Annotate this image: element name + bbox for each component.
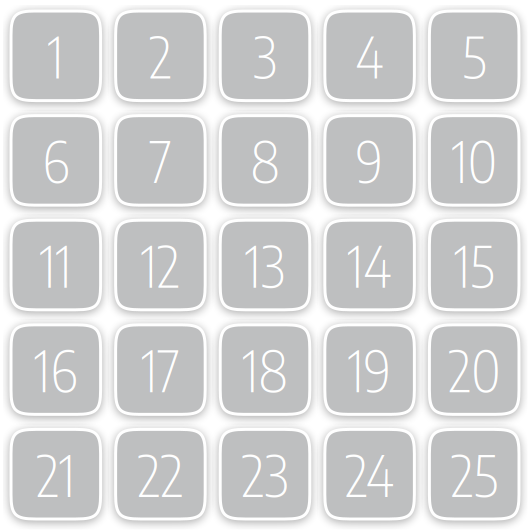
button[interactable]: 18 [220, 325, 310, 414]
button[interactable]: 7 [116, 116, 205, 205]
staticText: 17 [141, 335, 179, 405]
staticText: 2 [149, 21, 172, 91]
staticText: 20 [448, 335, 500, 405]
staticText: 3 [253, 21, 277, 91]
button[interactable]: 2 [116, 11, 205, 101]
staticText: 13 [245, 230, 285, 300]
staticText: 18 [242, 335, 287, 405]
button[interactable]: 16 [11, 325, 101, 414]
button[interactable]: 17 [116, 325, 205, 414]
staticText: 7 [149, 125, 171, 195]
staticText: 25 [451, 439, 498, 509]
button[interactable]: 21 [11, 429, 101, 519]
staticText: 1 [48, 21, 64, 91]
button[interactable]: 25 [429, 429, 519, 519]
staticText: 14 [348, 230, 392, 300]
button[interactable]: 8 [220, 116, 310, 205]
button[interactable]: 15 [429, 220, 519, 310]
button[interactable]: 6 [11, 116, 101, 205]
button[interactable]: 24 [325, 429, 414, 519]
button[interactable]: 9 [325, 116, 414, 205]
staticText: 19 [348, 335, 391, 405]
button[interactable]: 13 [220, 220, 310, 310]
staticText: 4 [356, 21, 384, 91]
staticText: 6 [42, 125, 69, 195]
button[interactable]: 10 [429, 116, 519, 205]
button[interactable]: 20 [429, 325, 519, 414]
staticText: 11 [40, 230, 72, 300]
staticText: 15 [454, 230, 494, 300]
staticText: 21 [36, 439, 75, 509]
button[interactable]: 5 [429, 11, 519, 101]
button[interactable]: 19 [325, 325, 414, 414]
button[interactable]: 11 [11, 220, 101, 310]
button[interactable]: 22 [116, 429, 205, 519]
staticText: 16 [34, 335, 77, 405]
staticText: 8 [250, 125, 279, 195]
button[interactable]: 3 [220, 11, 310, 101]
button[interactable]: 4 [325, 11, 414, 101]
button[interactable]: 1 [11, 11, 101, 101]
button[interactable]: 12 [116, 220, 205, 310]
staticText: 10 [452, 125, 497, 195]
button[interactable]: 14 [325, 220, 414, 310]
staticText: 23 [241, 439, 288, 509]
button[interactable]: 23 [220, 429, 310, 519]
staticText: 12 [141, 230, 180, 300]
staticText: 5 [462, 21, 486, 91]
staticText: 24 [345, 439, 394, 509]
staticText: 22 [137, 439, 183, 509]
staticText: 9 [356, 125, 383, 195]
